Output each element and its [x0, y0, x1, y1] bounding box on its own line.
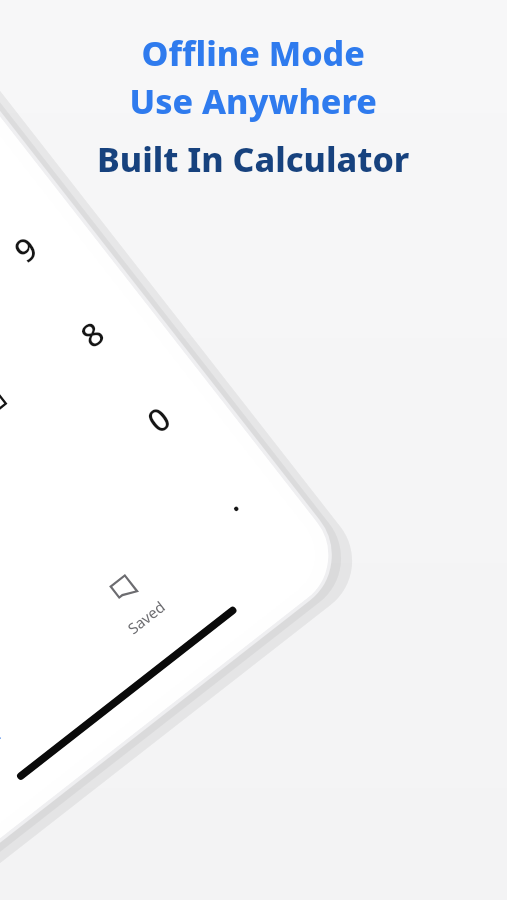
- button[interactable]: Offline calculator promo screen: [0, 0, 507, 900]
